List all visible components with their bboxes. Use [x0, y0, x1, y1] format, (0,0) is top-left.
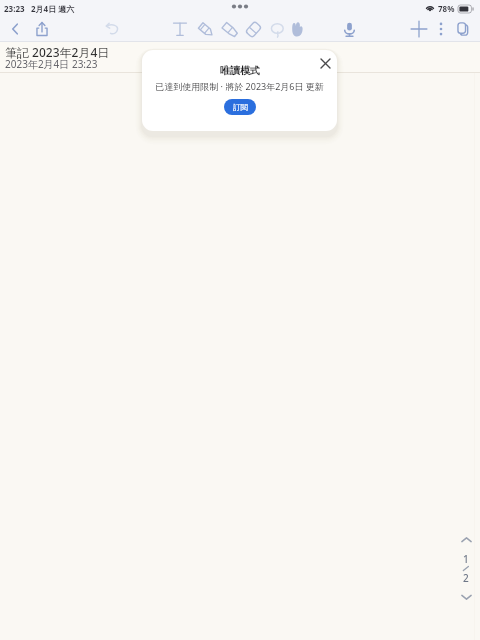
button[interactable]: Marker — [217, 17, 241, 41]
button[interactable]: Share — [30, 17, 54, 41]
button[interactable]: Pages — [451, 17, 475, 41]
staticText: 23:23 — [4, 3, 25, 14]
button[interactable]: Text tool — [168, 17, 192, 41]
staticText: 筆記 2023年2月4日 — [5, 44, 110, 60]
staticText: 唯讀模式 — [220, 64, 260, 77]
staticText: 2 — [463, 571, 469, 585]
staticText: 已達到使用限制 · 將於 2023年2月6日 更新 — [155, 80, 324, 92]
button[interactable]: Eraser — [241, 17, 265, 41]
button[interactable]: Pen — [193, 17, 217, 41]
staticText: 1 — [463, 552, 469, 566]
staticText: 2023年2月4日 23:23 — [5, 57, 98, 71]
button[interactable]: Next page — [456, 587, 476, 607]
staticText: 78% — [438, 3, 455, 14]
button[interactable]: Back — [3, 17, 27, 41]
button[interactable]: Add — [407, 17, 431, 41]
button[interactable]: Close — [317, 55, 333, 71]
button[interactable]: Undo — [100, 17, 124, 41]
button[interactable]: Lasso — [265, 17, 289, 41]
staticText: 訂閱 — [233, 103, 248, 112]
button[interactable]: 訂閱 — [224, 99, 256, 115]
button[interactable]: Hand — [285, 17, 309, 41]
button[interactable]: More options — [429, 17, 453, 41]
button[interactable]: Microphone — [337, 17, 361, 41]
staticText: 2月4日 週六 — [31, 3, 75, 14]
button[interactable]: Previous page — [456, 529, 476, 549]
